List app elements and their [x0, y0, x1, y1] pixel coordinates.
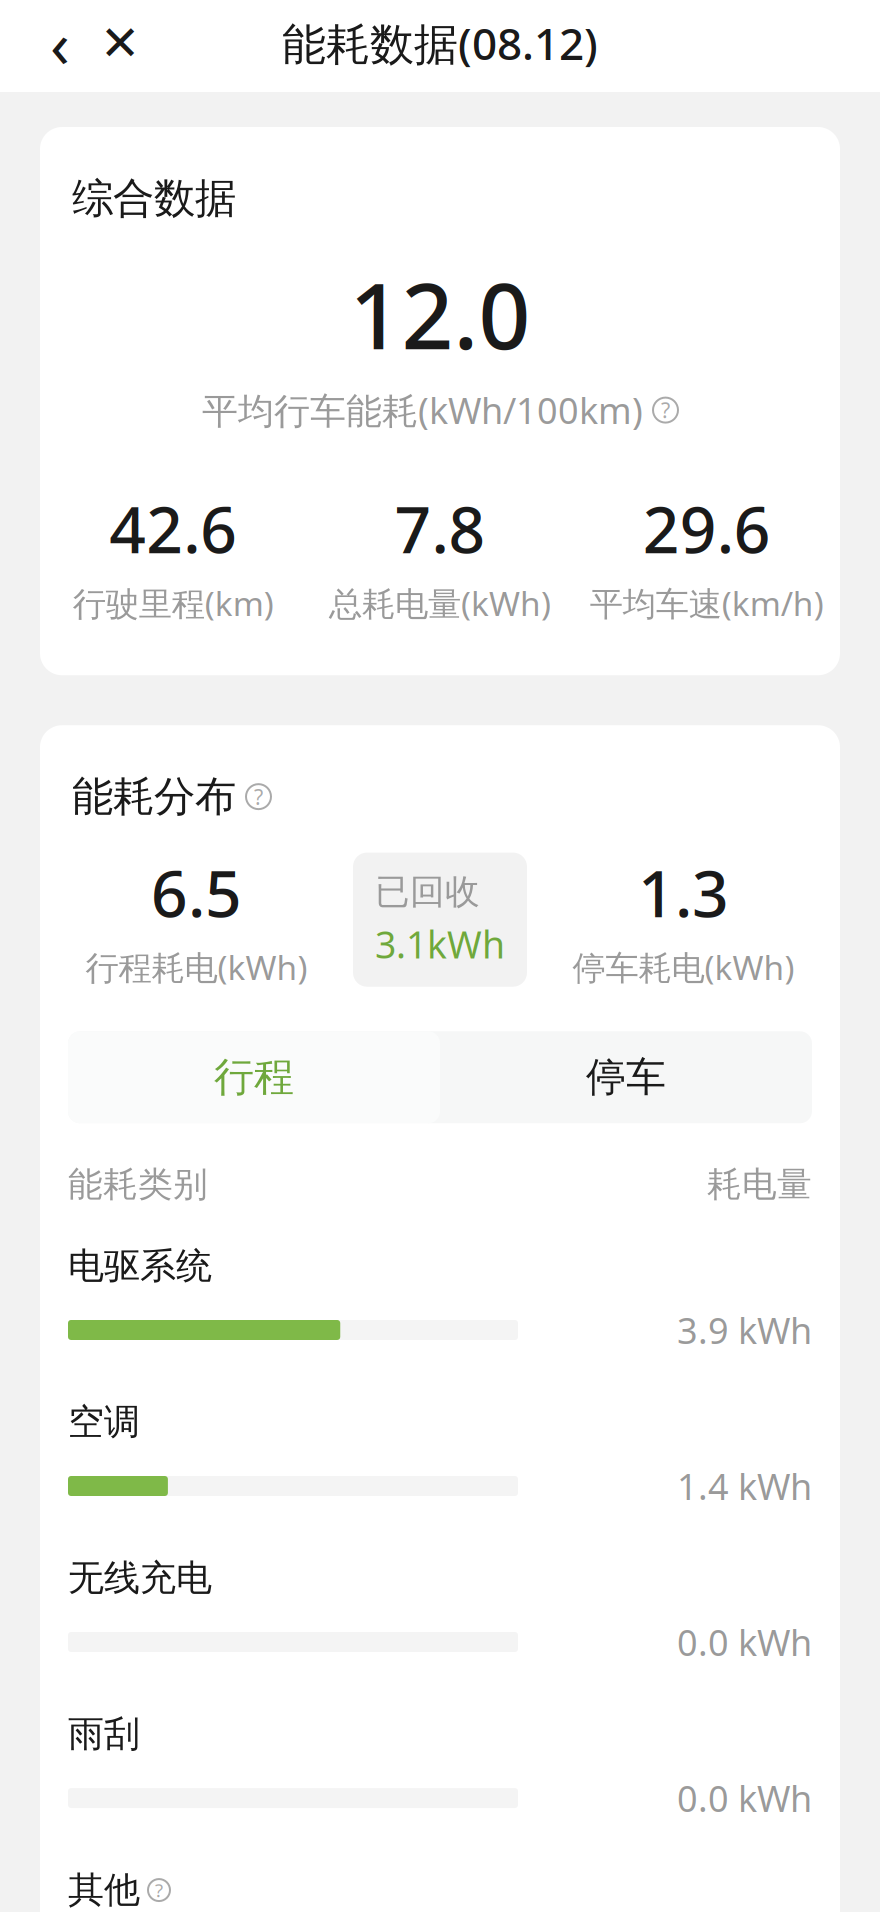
- staticText: 能耗数据(08.12): [282, 14, 598, 72]
- staticText: ✕: [100, 16, 140, 70]
- staticText: 能耗类别: [68, 1163, 208, 1206]
- staticText: 已回收: [375, 871, 480, 913]
- staticText: 平均行车能耗(kWh/100km): [202, 386, 643, 434]
- staticText: 无线充电: [68, 1556, 212, 1600]
- staticText: 行程耗电(kWh): [85, 945, 307, 989]
- staticText: 29.6: [643, 486, 771, 571]
- staticText: 1.3: [638, 850, 729, 935]
- staticText: 7.8: [394, 486, 485, 571]
- staticText: 0.0 kWh: [677, 1618, 812, 1666]
- staticText: 雨刮: [68, 1712, 140, 1756]
- staticText: 综合数据: [72, 173, 236, 224]
- button[interactable]: Back: [30, 8, 90, 78]
- staticText: 电驱系统: [68, 1244, 212, 1288]
- staticText: 总耗电量(kWh): [329, 581, 551, 625]
- button[interactable]: Close: [90, 8, 150, 78]
- staticText: ‹: [50, 0, 70, 85]
- button[interactable]: 停车: [440, 1031, 812, 1123]
- staticText: 0.0 kWh: [677, 1774, 812, 1822]
- staticText: 12.0: [349, 254, 530, 374]
- staticText: 耗电量: [707, 1163, 812, 1206]
- staticText: 行驶里程(km): [73, 581, 274, 625]
- staticText: 3.1kWh: [375, 919, 505, 969]
- staticText: 42.6: [109, 486, 237, 571]
- staticText: 其他: [68, 1868, 140, 1912]
- staticText: 3.9 kWh: [677, 1306, 812, 1354]
- staticText: ?: [155, 1878, 163, 1902]
- staticText: 6.5: [151, 850, 242, 935]
- button[interactable]: 行程: [68, 1031, 440, 1123]
- staticText: 平均车速(km/h): [590, 581, 824, 625]
- staticText: 行程: [214, 1053, 294, 1102]
- staticText: 停车耗电(kWh): [572, 945, 794, 989]
- staticText: ?: [254, 782, 263, 811]
- staticText: 1.4 kWh: [677, 1462, 812, 1510]
- staticText: ?: [661, 396, 670, 424]
- staticText: 空调: [68, 1400, 140, 1444]
- staticText: 停车: [586, 1053, 666, 1102]
- staticText: 能耗分布: [72, 771, 236, 822]
